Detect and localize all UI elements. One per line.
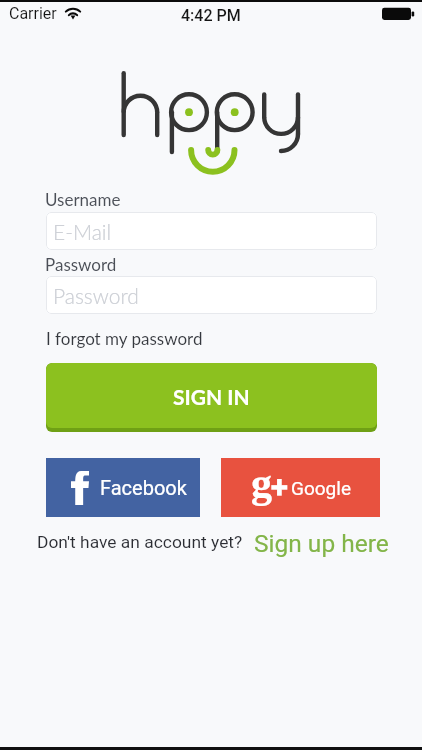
- staticText: Google: [291, 477, 351, 499]
- staticText: E-Mail: [53, 219, 112, 244]
- staticText: 4:42 PM: [181, 6, 241, 25]
- button[interactable]: g: [221, 458, 380, 517]
- button[interactable]: Password: [46, 276, 377, 314]
- button[interactable]: Facebook: [46, 458, 200, 517]
- button[interactable]: SIGN IN: [46, 363, 377, 432]
- staticText: Don't have an account yet?: [37, 532, 243, 552]
- staticText: Password: [45, 254, 117, 274]
- staticText: g: [251, 460, 272, 507]
- button[interactable]: E-Mail: [46, 212, 377, 250]
- staticText: Sign up here: [254, 529, 389, 558]
- staticText: Carrier: [9, 4, 57, 23]
- staticText: I forgot my password: [46, 328, 203, 348]
- staticText: Password: [53, 283, 139, 308]
- button[interactable]: Sign up here: [249, 526, 394, 561]
- staticText: +: [271, 469, 288, 504]
- button[interactable]: I forgot my password: [42, 325, 207, 351]
- staticText: SIGN IN: [173, 384, 250, 409]
- staticText: Username: [45, 189, 121, 209]
- staticText: Facebook: [100, 476, 187, 499]
